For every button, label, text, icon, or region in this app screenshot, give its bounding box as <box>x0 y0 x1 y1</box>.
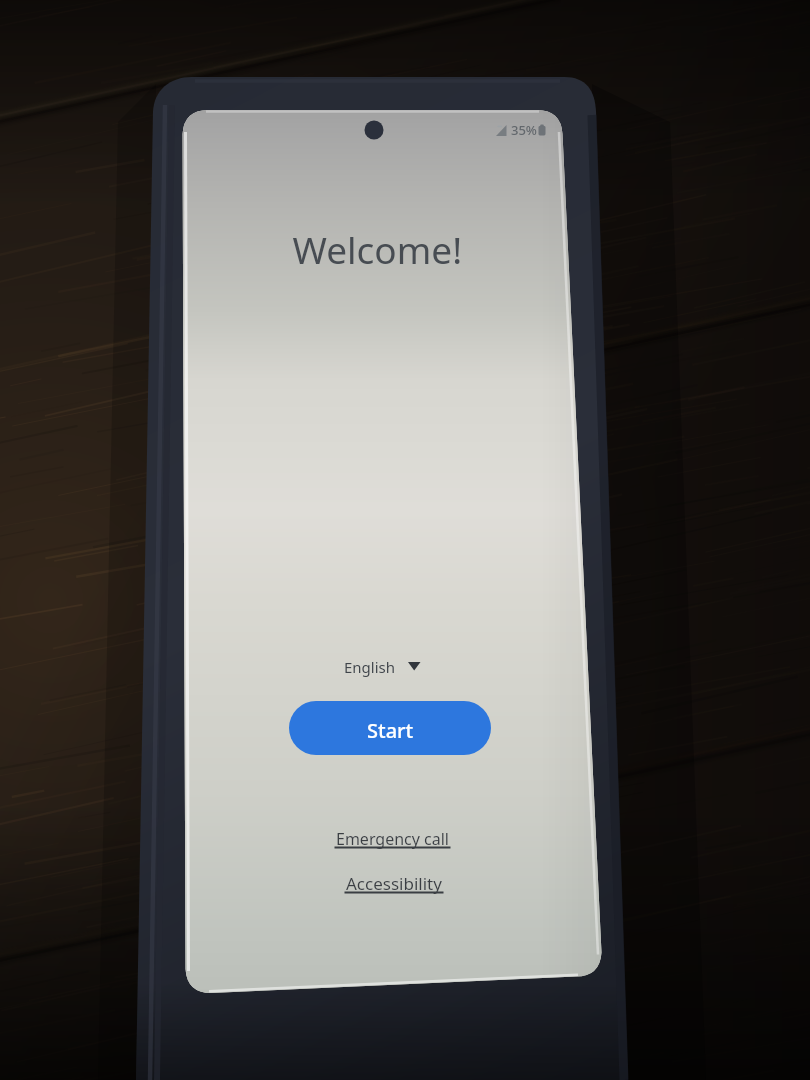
button[interactable]: Accessibility <box>343 872 447 898</box>
button[interactable]: Start <box>289 700 491 755</box>
button[interactable]: English, change language <box>338 652 428 682</box>
button[interactable]: Emergency call <box>334 828 456 854</box>
